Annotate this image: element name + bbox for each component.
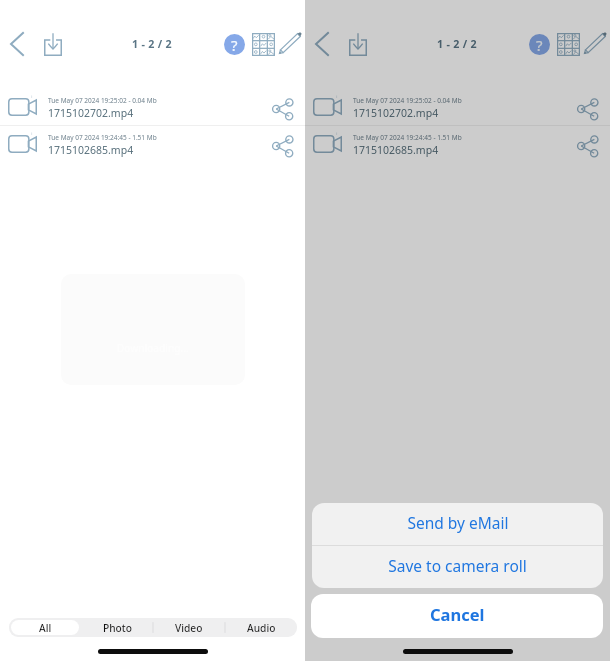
staticText: 1 - 2 / 2 (132, 37, 173, 52)
button[interactable]: Gallery (249, 30, 278, 59)
button[interactable]: Photo (83, 620, 151, 635)
button[interactable]: Save to camera roll (312, 546, 603, 588)
button[interactable]: Download (344, 30, 371, 58)
button[interactable]: Share (268, 96, 298, 122)
button[interactable]: Dismiss (305, 0, 610, 661)
staticText: Cancel (430, 603, 485, 625)
staticText: Send by eMail (407, 512, 509, 533)
button[interactable]: Tue May 07 2024 19:25:02 - 0.04 Mb (0, 89, 305, 125)
button[interactable]: Share (573, 133, 603, 159)
staticText: 1715102685.mp4 (353, 143, 439, 157)
button[interactable]: Send by eMail (312, 503, 603, 545)
staticText: Audio (247, 621, 276, 635)
button[interactable]: Share (268, 133, 298, 159)
button[interactable]: Download (39, 30, 66, 58)
staticText: 1 - 2 / 2 (437, 37, 478, 52)
button[interactable]: All (11, 620, 79, 635)
button[interactable]: Tue May 07 2024 19:24:45 - 1.51 Mb (305, 126, 610, 162)
button[interactable]: Cancel (311, 594, 603, 638)
button[interactable]: Help (526, 31, 552, 57)
staticText: ? (536, 35, 543, 55)
button[interactable]: Help (221, 31, 247, 57)
staticText: ? (231, 35, 238, 55)
button[interactable]: Back (309, 28, 334, 59)
button[interactable]: Edit (581, 31, 608, 56)
staticText: 1715102685.mp4 (48, 143, 134, 157)
staticText: Photo (103, 621, 132, 635)
staticText: Video (175, 621, 203, 635)
button[interactable]: Back (4, 28, 29, 59)
button[interactable]: Video (155, 620, 223, 635)
staticText: Tue May 07 2024 19:24:45 - 1.51 Mb (353, 133, 462, 142)
button[interactable]: Gallery (554, 30, 583, 59)
staticText: All (39, 621, 52, 635)
button[interactable]: Tue May 07 2024 19:24:45 - 1.51 Mb (0, 126, 305, 162)
staticText: Tue May 07 2024 19:25:02 - 0.04 Mb (48, 96, 157, 105)
staticText: Tue May 07 2024 19:24:45 - 1.51 Mb (48, 133, 157, 142)
staticText: 1715102702.mp4 (353, 106, 439, 120)
button[interactable]: Tue May 07 2024 19:25:02 - 0.04 Mb (305, 89, 610, 125)
staticText: Save to camera roll (388, 555, 527, 576)
staticText: 1715102702.mp4 (48, 106, 134, 120)
button[interactable]: Audio (227, 620, 295, 635)
button[interactable]: Share (573, 96, 603, 122)
staticText: Tue May 07 2024 19:25:02 - 0.04 Mb (353, 96, 462, 105)
button[interactable]: Edit (276, 31, 303, 56)
